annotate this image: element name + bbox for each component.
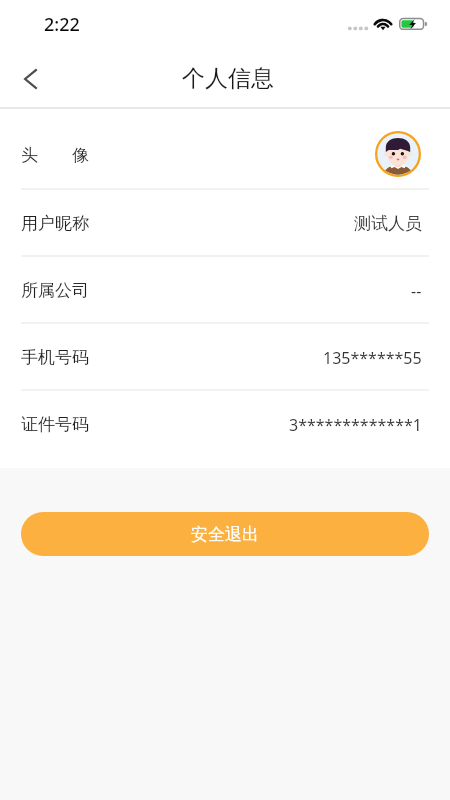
- staticText: --: [411, 280, 422, 302]
- button[interactable]: 手机号码: [0, 324, 450, 391]
- staticText: 安全退出: [191, 524, 259, 545]
- staticText: 用户昵称: [21, 213, 89, 234]
- staticText: 个人信息: [182, 64, 274, 93]
- staticText: 2:22: [44, 12, 80, 37]
- button[interactable]: 安全退出: [21, 512, 429, 556]
- staticText: 手机号码: [21, 347, 89, 368]
- staticText: 证件号码: [21, 414, 89, 435]
- staticText: 测试人员: [354, 213, 422, 234]
- staticText: 3*************1: [289, 414, 422, 436]
- staticText: 所属公司: [21, 280, 89, 301]
- button[interactable]: 头 像: [0, 109, 450, 190]
- staticText: 头 像: [21, 143, 89, 166]
- button[interactable]: 证件号码: [0, 391, 450, 468]
- button[interactable]: 用户昵称: [0, 190, 450, 257]
- button[interactable]: 所属公司: [0, 257, 450, 324]
- staticText: 135******55: [323, 347, 422, 369]
- button[interactable]: Back: [0, 51, 61, 107]
